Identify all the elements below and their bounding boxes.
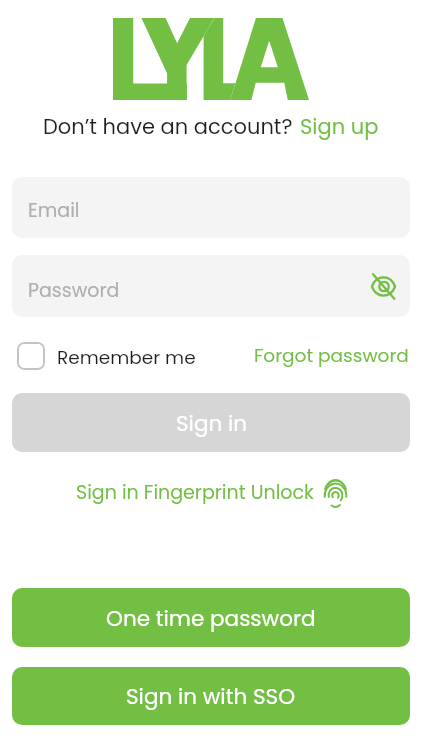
button[interactable]: Email [12, 177, 410, 238]
staticText: Password [28, 277, 120, 304]
button[interactable]: Password [12, 255, 410, 317]
button[interactable]: Sign in with SSO [12, 667, 410, 725]
button[interactable]: Remember me [17, 342, 196, 370]
button[interactable]: Sign in [12, 393, 410, 452]
button[interactable]: One time password [12, 588, 410, 647]
button[interactable]: Sign in Fingerprint Unlock [0, 479, 422, 506]
staticText: Forgot password [254, 343, 409, 369]
staticText: Sign in Fingerprint Unlock [76, 479, 314, 506]
button[interactable]: Forgot password [254, 343, 409, 369]
staticText: Sign in [176, 408, 247, 438]
staticText: Email [28, 197, 80, 224]
button[interactable]: Sign up [300, 112, 379, 141]
staticText: Sign in with SSO [126, 681, 296, 711]
staticText: Sign up [300, 112, 379, 141]
staticText: One time password [106, 603, 316, 633]
staticText: Don’t have an account? [43, 112, 293, 141]
staticText: Remember me [57, 345, 196, 371]
button[interactable]: Show password [366, 269, 400, 303]
